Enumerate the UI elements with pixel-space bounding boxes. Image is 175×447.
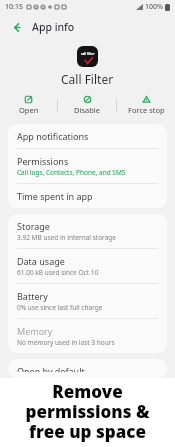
button[interactable]: Battery <box>8 284 167 318</box>
button[interactable]: Open by default <box>8 359 167 378</box>
staticText: 10:15 <box>5 2 23 12</box>
staticText: App info <box>32 20 75 34</box>
staticText: 0% use since last full charge <box>17 303 103 312</box>
staticText: Call logs, Contacts, Phone, and SMS <box>17 168 126 177</box>
staticText: Memory <box>17 325 53 337</box>
staticText: Call Filter <box>61 71 114 87</box>
button[interactable]: Storage <box>8 214 167 248</box>
staticText: Battery <box>17 290 48 302</box>
staticText: 61.00 kB used since Oct 10 <box>17 268 99 277</box>
staticText: Open by default <box>17 365 85 372</box>
button[interactable]: Memory <box>8 319 167 353</box>
button[interactable]: Force stop <box>117 93 175 117</box>
staticText: 3.92 MB used in internal storage <box>17 233 116 242</box>
button[interactable]: App notifications <box>8 124 167 148</box>
button[interactable]: Back <box>9 18 27 36</box>
staticText: Time spent in app <box>17 190 93 202</box>
staticText: Disable <box>74 105 100 115</box>
button[interactable]: Disable <box>58 93 116 117</box>
staticText: App notifications <box>17 130 89 142</box>
staticText: 100% <box>145 2 163 12</box>
staticText: Storage <box>17 220 50 232</box>
staticText: No memory used in last 3 hours <box>17 338 115 347</box>
staticText: Force stop <box>128 105 165 115</box>
staticText: Remove permissions & free up space <box>25 380 150 443</box>
button[interactable]: Open <box>0 93 57 117</box>
staticText: Open <box>19 105 39 115</box>
staticText: call filter <box>81 52 95 56</box>
staticText: Permissions <box>17 155 69 167</box>
button[interactable]: Data usage <box>8 249 167 283</box>
staticText: Data usage <box>17 255 65 267</box>
button[interactable]: Permissions <box>8 149 167 183</box>
button[interactable]: Time spent in app <box>8 184 167 208</box>
